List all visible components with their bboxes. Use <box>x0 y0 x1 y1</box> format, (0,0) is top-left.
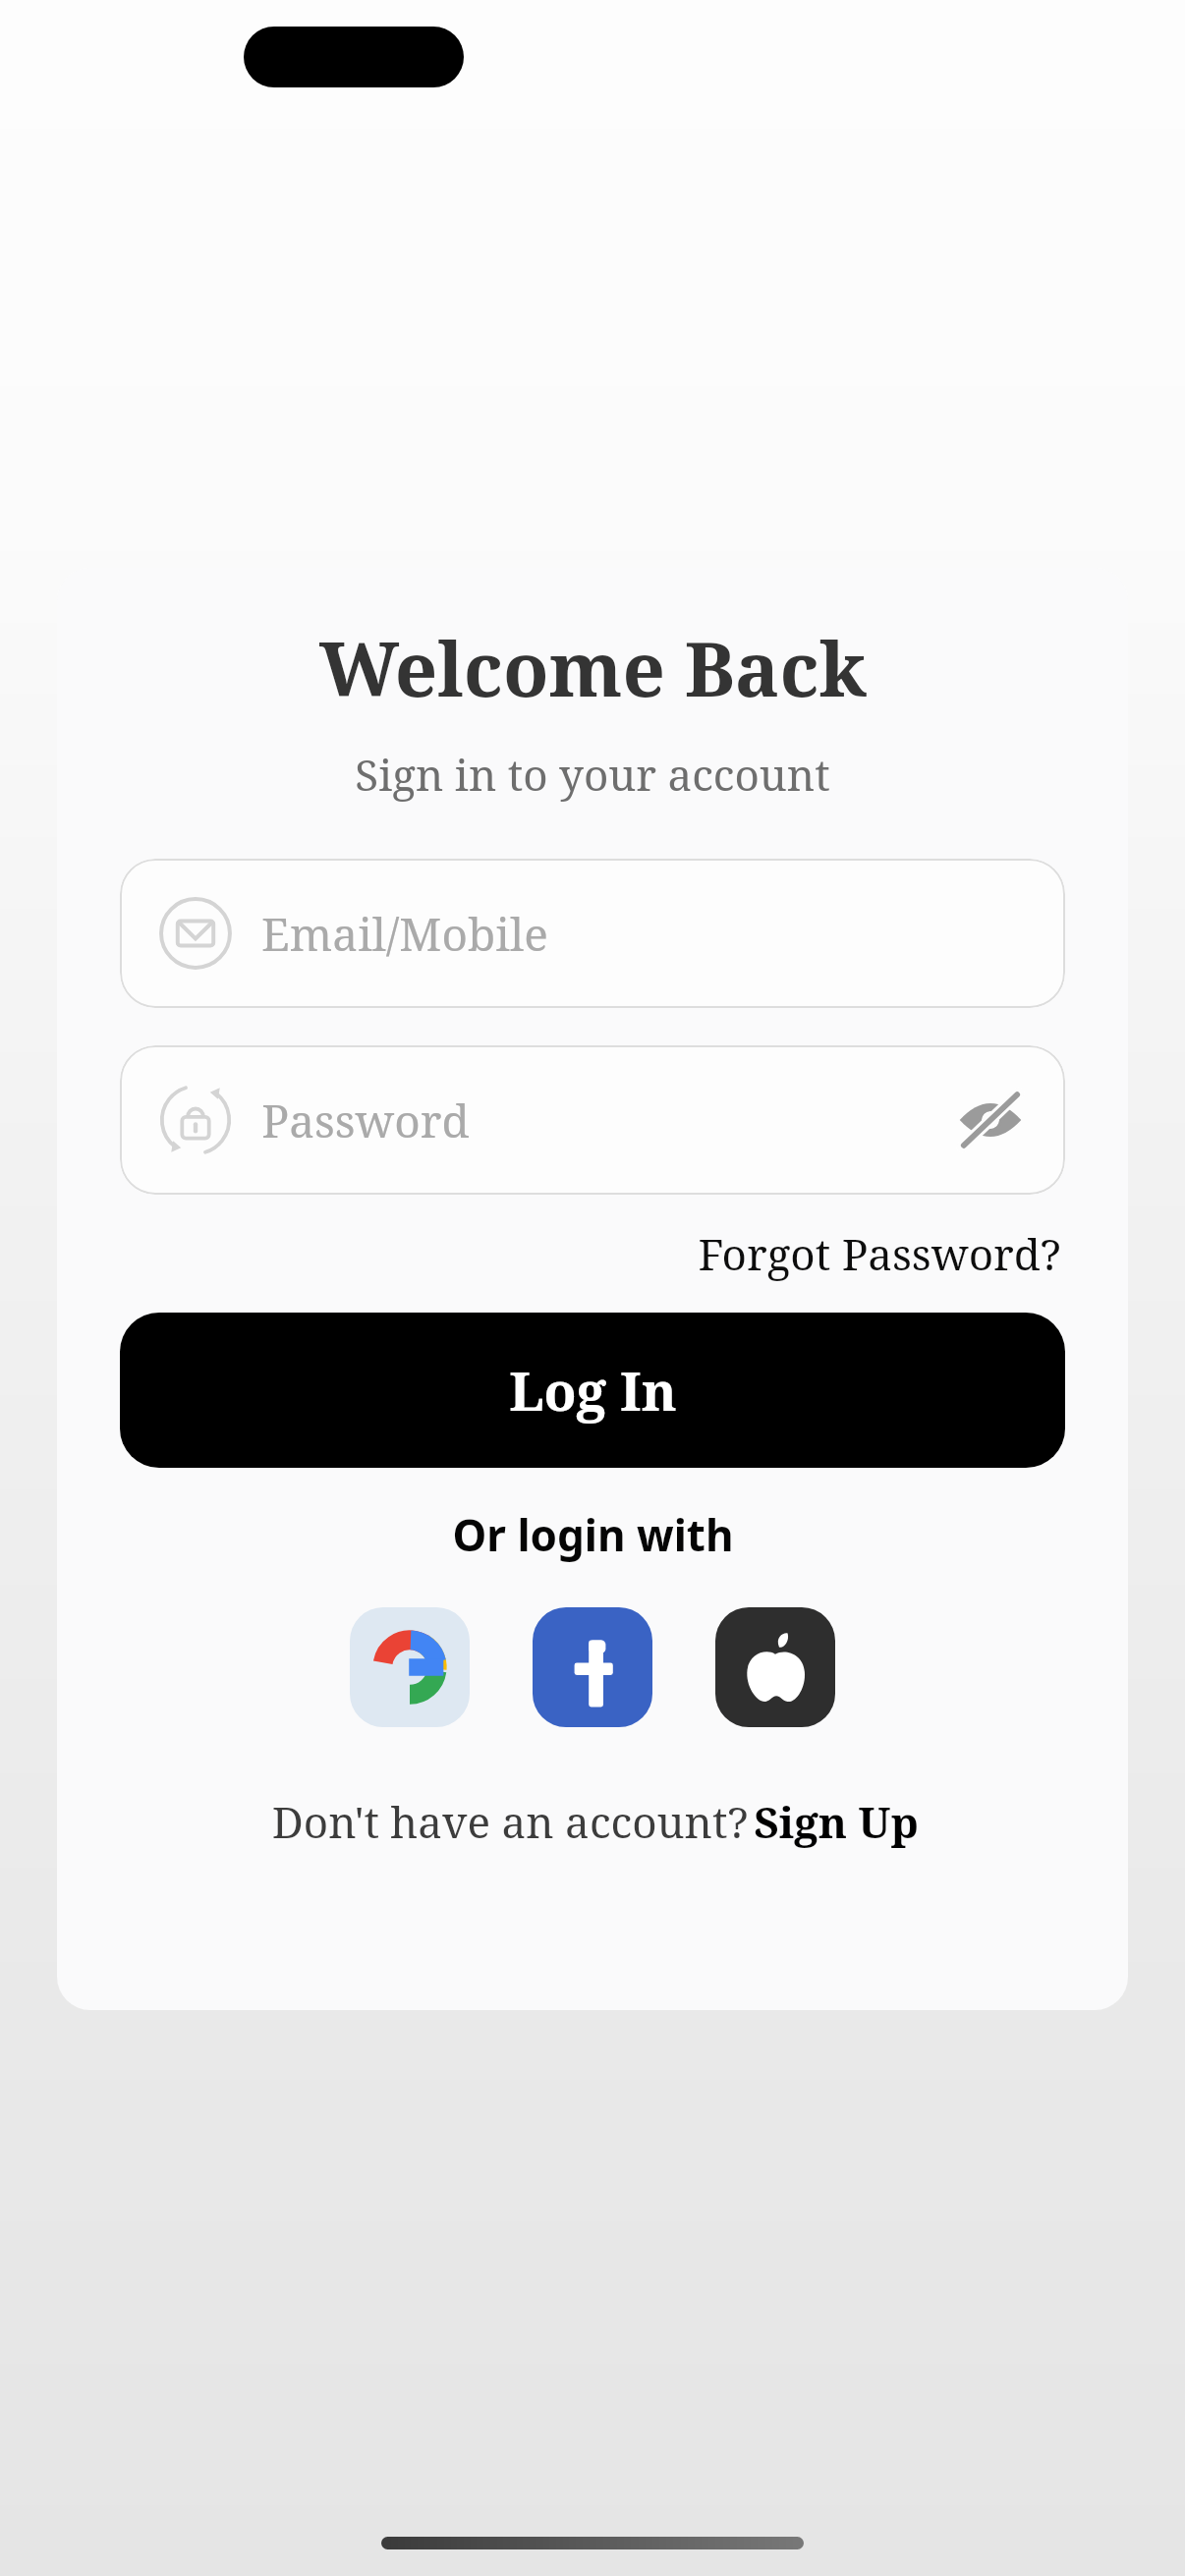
staticText: Don't have an account? <box>266 1792 754 1851</box>
button[interactable]: Log In <box>120 1313 1065 1468</box>
staticText: Password <box>261 1090 470 1151</box>
button[interactable]: Forgot Password? <box>694 1220 1065 1287</box>
staticText: Welcome Back <box>319 617 867 719</box>
button[interactable]: Password <box>120 1045 1065 1195</box>
staticText: Forgot Password? <box>698 1224 1061 1283</box>
staticText: Sign Up <box>754 1792 919 1851</box>
button[interactable]: Email/Mobile <box>120 859 1065 1008</box>
staticText: Sign in to your account <box>355 745 830 804</box>
staticText: Email/Mobile <box>261 903 548 965</box>
button[interactable]: Sign Up <box>754 1792 919 1851</box>
staticText: Log In <box>509 1354 677 1427</box>
staticText: Or login with <box>452 1505 734 1564</box>
button[interactable]: Toggle password visibility <box>955 1085 1026 1155</box>
button[interactable]: Sign in with Facebook <box>533 1607 652 1727</box>
button[interactable]: Sign in with Apple <box>715 1607 835 1727</box>
button[interactable]: Sign in with Google <box>350 1607 470 1727</box>
